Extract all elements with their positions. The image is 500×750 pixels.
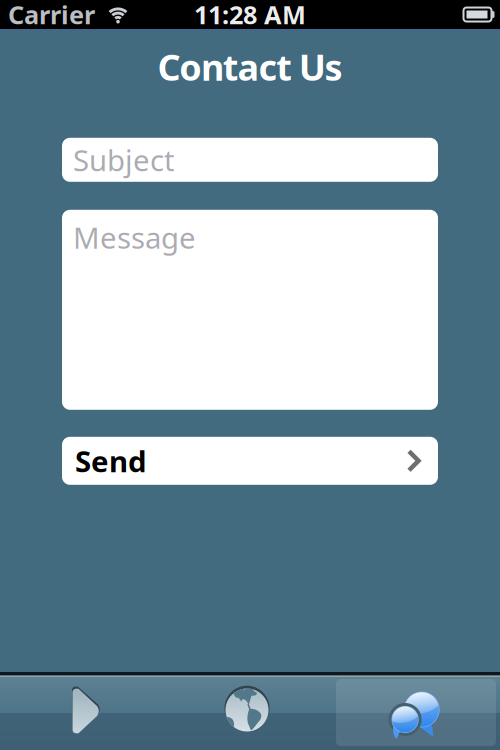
button[interactable]: Contact	[333, 672, 500, 750]
staticText: 11:28 AM	[194, 0, 306, 31]
staticText: Carrier	[8, 0, 95, 31]
staticText: Send	[75, 441, 147, 480]
button[interactable]: Subject	[62, 138, 438, 182]
staticText: Message	[73, 218, 196, 257]
button[interactable]: Message	[62, 210, 438, 410]
staticText: Subject	[73, 140, 175, 179]
button[interactable]: Play	[0, 672, 166, 750]
staticText: Contact Us	[157, 43, 343, 91]
button[interactable]: Web	[166, 672, 333, 750]
button[interactable]: Send	[62, 437, 438, 485]
